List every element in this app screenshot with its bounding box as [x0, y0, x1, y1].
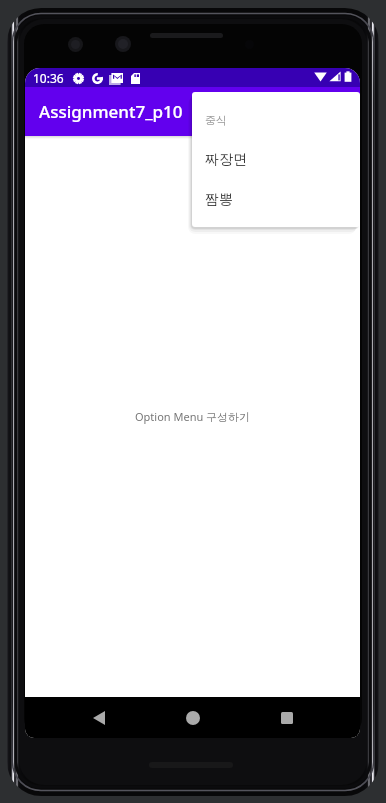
button[interactable]: 중식	[192, 100, 360, 140]
staticText: Option Menu 구성하기	[135, 409, 251, 424]
button[interactable]: 짬뽕	[192, 180, 360, 220]
staticText: 중식	[205, 113, 227, 127]
button[interactable]: Back	[78, 697, 119, 738]
button[interactable]: Recent apps	[266, 697, 307, 738]
staticText: 짜장면	[205, 151, 247, 169]
button[interactable]: 짜장면	[192, 140, 360, 180]
staticText: Assignment7_p10	[39, 100, 183, 123]
staticText: 짬뽕	[205, 191, 233, 209]
staticText: 10:36	[33, 70, 64, 86]
button[interactable]: Home	[172, 697, 213, 738]
